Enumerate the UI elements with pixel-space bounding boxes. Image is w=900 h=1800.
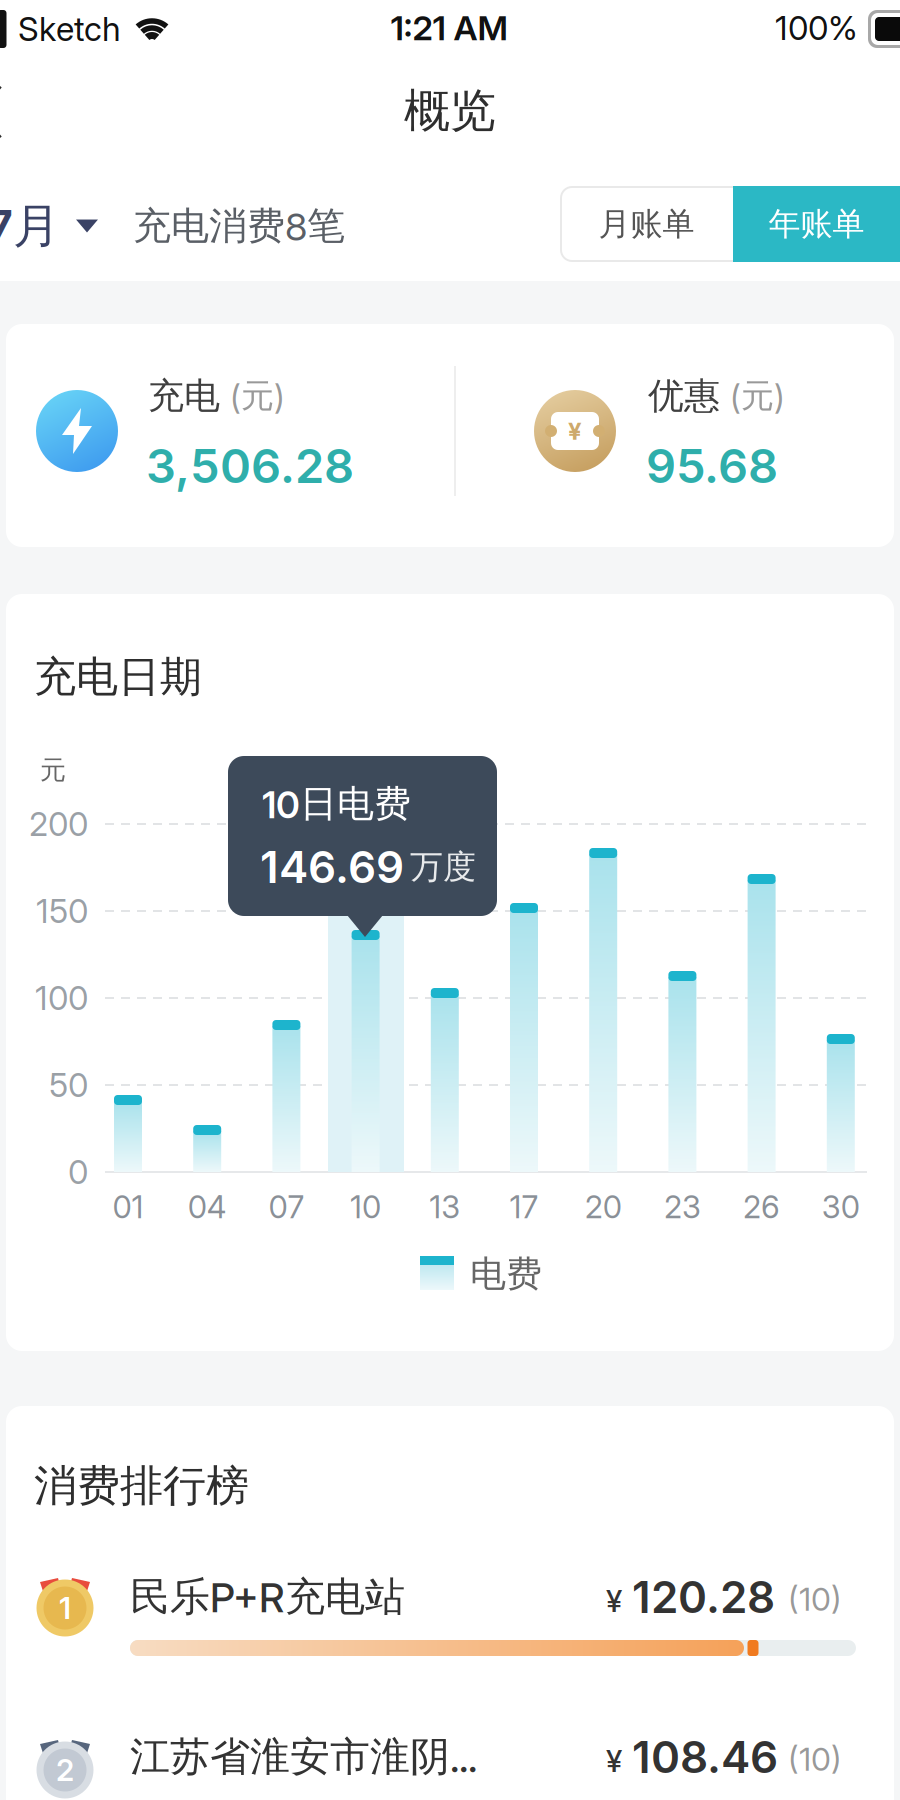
staticText: 100 bbox=[35, 978, 88, 1018]
staticText: 01 bbox=[112, 1188, 143, 1226]
staticText: 消费排行榜 bbox=[34, 1459, 249, 1513]
staticText: 充电日期 bbox=[34, 650, 202, 703]
staticText: 146.69 bbox=[260, 840, 404, 894]
staticText: 95.68 bbox=[646, 438, 778, 494]
staticText: 充电消费8笔 bbox=[133, 202, 345, 250]
staticText: 1 bbox=[59, 1590, 71, 1626]
staticText: 10日电费 bbox=[262, 781, 411, 827]
staticText: 元 bbox=[40, 754, 66, 786]
staticText: 万度 bbox=[410, 846, 476, 888]
staticText: 26 bbox=[743, 1188, 780, 1226]
staticText: 30 bbox=[822, 1188, 860, 1226]
button[interactable]: Back bbox=[0, 84, 4, 140]
staticText: 04 bbox=[188, 1188, 227, 1226]
staticText: 200 bbox=[29, 804, 88, 844]
staticText: ¥ bbox=[606, 1743, 622, 1779]
button[interactable]: 月账单 bbox=[560, 186, 733, 262]
staticText: (元) bbox=[230, 375, 285, 417]
staticText: (10) bbox=[788, 1740, 842, 1778]
staticText: 20 bbox=[585, 1188, 622, 1226]
staticText: 108.46 bbox=[632, 1730, 778, 1784]
staticText: 年账单 bbox=[768, 204, 864, 244]
staticText: Sketch bbox=[18, 9, 121, 49]
staticText: 50 bbox=[49, 1065, 88, 1105]
staticText: 10 bbox=[350, 1188, 381, 1226]
staticText: ¥ bbox=[568, 416, 582, 445]
staticText: 23 bbox=[664, 1188, 701, 1226]
staticText: ¥ bbox=[606, 1583, 622, 1619]
staticText: 07 bbox=[268, 1188, 304, 1226]
button[interactable]: 选择月份 bbox=[0, 196, 98, 256]
staticText: 民乐P+R充电站 bbox=[130, 1572, 405, 1622]
staticText: 3,506.28 bbox=[146, 438, 354, 494]
staticText: (元) bbox=[730, 375, 785, 417]
staticText: 月账单 bbox=[598, 204, 694, 244]
button[interactable]: 1 bbox=[32, 1560, 868, 1672]
staticText: 概览 bbox=[404, 82, 496, 140]
button[interactable]: 年账单 bbox=[733, 186, 900, 262]
staticText: 150 bbox=[36, 891, 88, 931]
staticText: 120.28 bbox=[632, 1570, 775, 1624]
staticText: 充电 bbox=[148, 373, 220, 419]
staticText: 2 bbox=[56, 1752, 74, 1788]
staticText: 0 bbox=[68, 1152, 88, 1192]
staticText: (10) bbox=[788, 1580, 842, 1618]
staticText: 优惠 bbox=[648, 373, 720, 419]
button[interactable]: 2 bbox=[32, 1700, 868, 1800]
staticText: 13 bbox=[429, 1188, 460, 1226]
staticText: 7月 bbox=[0, 196, 60, 256]
staticText: 1:21 AM bbox=[390, 7, 507, 48]
staticText: 电费 bbox=[470, 1251, 542, 1297]
staticText: 17 bbox=[509, 1188, 538, 1226]
staticText: 100% bbox=[775, 8, 858, 48]
staticText: 江苏省淮安市淮阴... bbox=[130, 1732, 477, 1782]
